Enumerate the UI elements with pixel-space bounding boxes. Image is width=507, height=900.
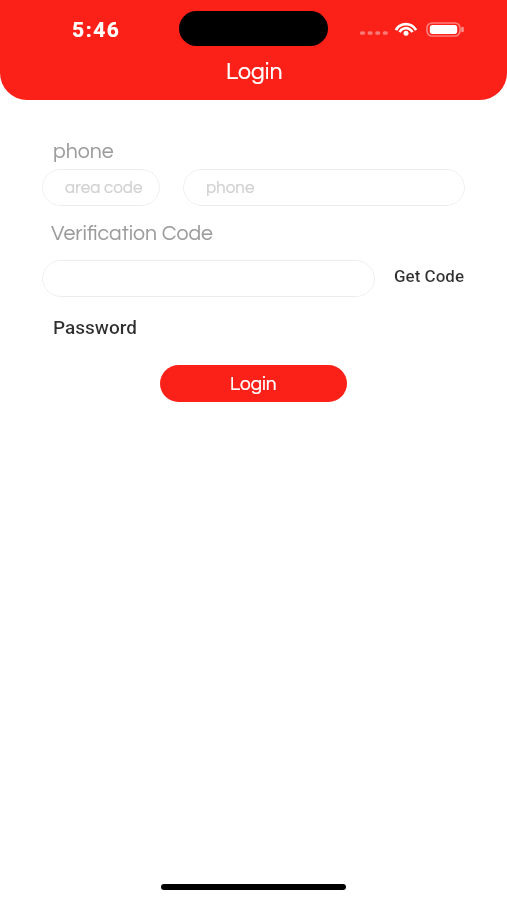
- staticText: area code: [65, 179, 143, 197]
- staticText: Password: [53, 316, 137, 338]
- staticText: Login: [226, 60, 283, 84]
- button[interactable]: Get Code: [388, 262, 471, 290]
- button[interactable]: area code: [42, 169, 160, 206]
- button[interactable]: [42, 260, 375, 297]
- button[interactable]: phone: [183, 169, 465, 206]
- staticText: Get Code: [394, 266, 465, 286]
- staticText: Verification Code: [51, 223, 213, 245]
- other: Wi-Fi: [393, 19, 419, 36]
- staticText: Login: [230, 374, 277, 394]
- staticText: phone: [53, 141, 114, 163]
- staticText: phone: [206, 179, 255, 197]
- button[interactable]: Login: [160, 365, 347, 402]
- other: Battery: [427, 21, 465, 38]
- staticText: 5:46: [72, 18, 121, 43]
